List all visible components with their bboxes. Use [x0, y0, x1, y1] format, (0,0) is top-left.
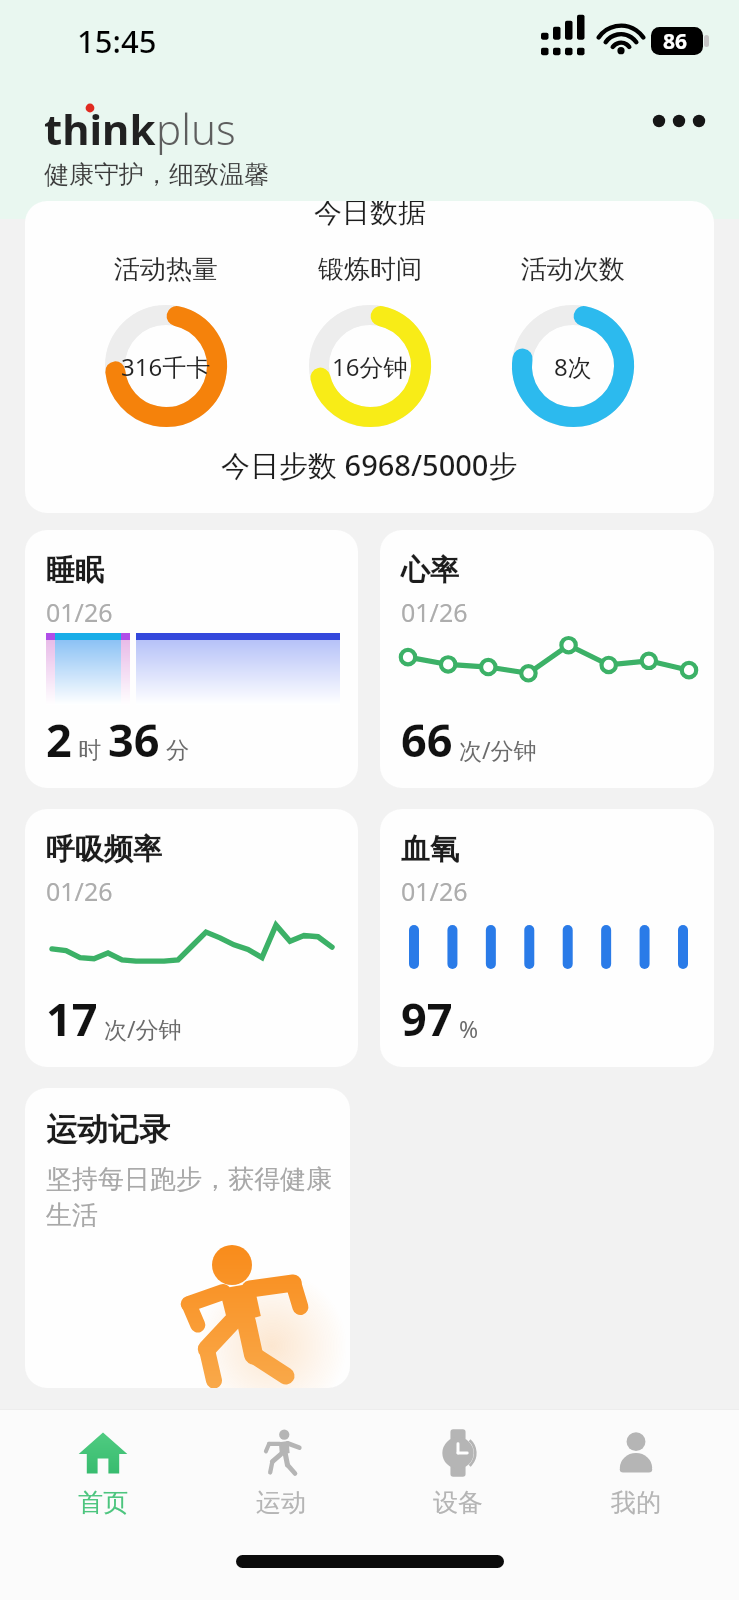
button[interactable]: More options — [647, 94, 711, 148]
staticText: 睡眠 — [46, 552, 104, 589]
staticText: 16分钟 — [332, 350, 408, 383]
staticText: 今日数据 — [314, 201, 426, 230]
staticText: % — [459, 1013, 479, 1044]
staticText: 设备 — [433, 1487, 483, 1518]
staticText: 首页 — [78, 1487, 128, 1518]
staticText: 97 — [401, 988, 453, 1049]
staticText: 活动次数 — [521, 253, 625, 286]
staticText: 01/26 — [401, 595, 468, 629]
staticText: 心率 — [401, 552, 459, 589]
staticText: 8次 — [554, 350, 592, 383]
button[interactable]: 睡眠 — [25, 530, 358, 788]
button[interactable]: 首页 — [28, 1410, 178, 1538]
staticText: 今日步数 6968/5000步 — [221, 445, 518, 485]
staticText: 36 — [108, 709, 160, 770]
staticText: 66 — [401, 709, 453, 770]
staticText: 分 — [166, 736, 189, 765]
button[interactable]: 心率 — [380, 530, 714, 788]
staticText: 2 — [46, 709, 72, 770]
button[interactable]: 血氧 — [380, 809, 714, 1067]
staticText: 01/26 — [401, 874, 468, 908]
staticText: plus — [156, 100, 236, 157]
staticText: 01/26 — [46, 874, 113, 908]
button[interactable]: 运动 — [206, 1410, 356, 1538]
button[interactable]: 今日数据 — [25, 201, 714, 513]
staticText: 316千卡 — [121, 350, 211, 383]
staticText: 活动热量 — [114, 253, 218, 286]
staticText: 时 — [78, 736, 101, 765]
staticText: 次/分钟 — [104, 1013, 182, 1044]
staticText: 次/分钟 — [459, 734, 537, 765]
staticText: 呼吸频率 — [46, 831, 162, 868]
button[interactable]: 设备 — [383, 1410, 533, 1538]
staticText: 运动记录 — [46, 1110, 170, 1149]
staticText: 锻炼时间 — [318, 253, 422, 286]
staticText: 我的 — [611, 1487, 661, 1518]
staticText: think — [44, 100, 156, 157]
staticText: 坚持每日跑步，获得健康生活 — [46, 1163, 334, 1232]
button[interactable]: 呼吸频率 — [25, 809, 358, 1067]
staticText: 健康守护，细致温馨 — [44, 159, 269, 190]
button[interactable]: 我的 — [561, 1410, 711, 1538]
button[interactable]: 运动记录 — [25, 1088, 350, 1388]
staticText: 15:45 — [77, 20, 157, 62]
staticText: 运动 — [256, 1487, 306, 1518]
staticText: 86 — [663, 27, 688, 56]
staticText: 17 — [46, 988, 98, 1049]
staticText: 01/26 — [46, 595, 113, 629]
staticText: 血氧 — [401, 831, 459, 868]
